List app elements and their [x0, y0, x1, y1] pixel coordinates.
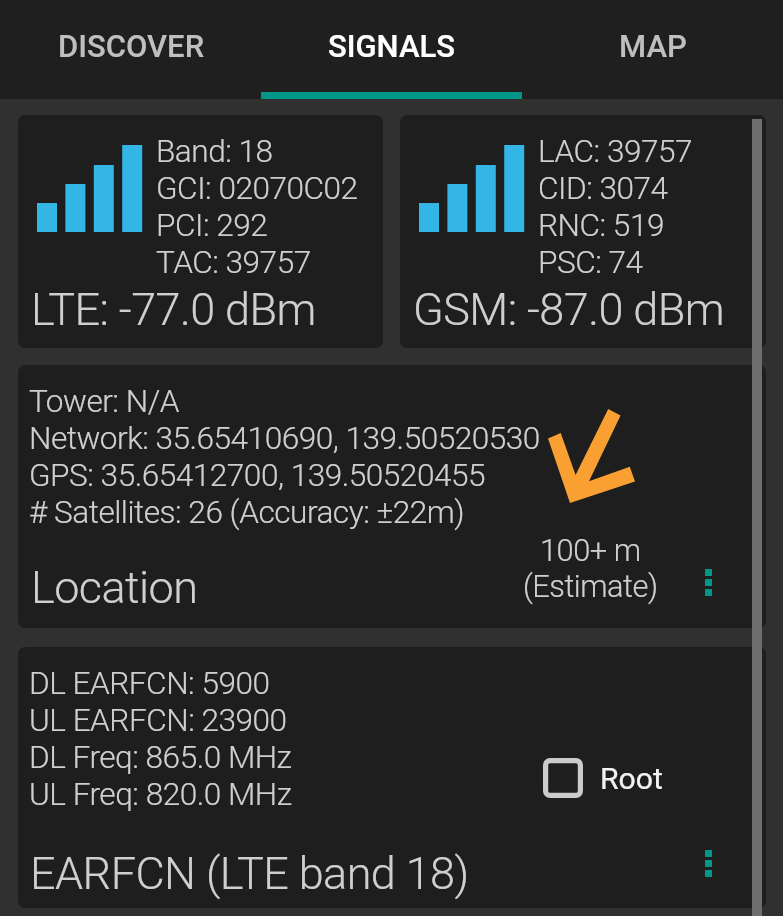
staticText: Network: 35.65410690, 139.50520530 [29, 420, 540, 457]
staticText: LAC: 39757 [538, 133, 693, 170]
staticText: GPS: 35.65412700, 139.50520455 [29, 457, 485, 494]
staticText: GSM: -87.0 dBm [413, 283, 725, 336]
button[interactable]: LAC: 39757 [400, 115, 766, 348]
staticText: Location [31, 561, 198, 614]
staticText: GCI: 02070C02 [156, 170, 358, 207]
staticText: SIGNALS [328, 28, 456, 64]
staticText: Band: 18 [156, 133, 273, 170]
button[interactable]: More options [692, 554, 724, 610]
button[interactable]: More options [692, 835, 724, 891]
staticText: DL Freq: 865.0 MHz [29, 739, 292, 776]
staticText: EARFCN (LTE band 18) [30, 847, 469, 900]
staticText: CID: 3074 [538, 170, 668, 207]
other: Bearing to tower [548, 409, 635, 503]
staticText: MAP [619, 28, 687, 64]
button[interactable]: DISCOVER [0, 0, 261, 99]
staticText: PSC: 74 [538, 244, 643, 281]
staticText: UL EARFCN: 23900 [29, 702, 287, 739]
button[interactable]: SIGNALS [261, 0, 522, 99]
button[interactable]: MAP [522, 0, 783, 99]
staticText: UL Freq: 820.0 MHz [29, 776, 292, 813]
staticText: Root [600, 761, 663, 796]
staticText: LTE: -77.0 dBm [31, 283, 316, 336]
button[interactable]: Tower: N/A [18, 365, 766, 628]
staticText: DL EARFCN: 5900 [29, 665, 270, 702]
staticText: Tower: N/A [29, 383, 179, 420]
button[interactable]: Band: 18 [18, 115, 383, 348]
staticText: DISCOVER [58, 28, 204, 64]
staticText: 100+ m [540, 532, 641, 568]
staticText: # Satellites: 26 (Accuracy: ±22m) [29, 494, 465, 531]
staticText: (Estimate) [523, 568, 658, 604]
button[interactable]: DL EARFCN: 5900 [18, 647, 766, 908]
staticText: RNC: 519 [538, 207, 664, 244]
staticText: PCI: 292 [156, 207, 268, 244]
button[interactable]: Root [535, 750, 673, 806]
staticText: TAC: 39757 [156, 244, 311, 281]
